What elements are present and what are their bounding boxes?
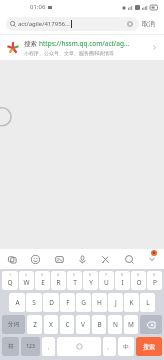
button[interactable]: 123 — [21, 337, 40, 356]
button[interactable]: Sticker — [4, 251, 20, 267]
staticText: 取消 — [142, 20, 155, 28]
staticText: V — [81, 320, 85, 329]
staticText: act/agile/417956/index.html — [18, 20, 70, 28]
staticText: G — [81, 298, 86, 307]
button[interactable]: 9 — [131, 271, 146, 290]
staticText: 1 — [9, 272, 12, 277]
staticText: A — [15, 298, 20, 307]
button[interactable]: K — [124, 293, 139, 312]
button[interactable]: G — [76, 293, 91, 312]
button[interactable]: H — [92, 293, 107, 312]
staticText: B — [97, 320, 102, 329]
staticText: 0 — [153, 272, 156, 277]
button[interactable]: Handwriting — [97, 251, 113, 267]
button[interactable]: 7 — [99, 271, 114, 290]
staticText: 123 — [26, 343, 35, 350]
staticText: https://hssm.qq.com/act/ag… — [39, 39, 130, 48]
staticText: Q — [7, 278, 13, 287]
button[interactable]: 0 — [147, 271, 162, 290]
staticText: W — [23, 278, 30, 287]
button[interactable]: act/agile/417956/index.html — [6, 17, 139, 31]
staticText: S — [32, 298, 36, 307]
button[interactable]: Voice — [74, 251, 90, 267]
button[interactable]: Z — [27, 315, 42, 334]
staticText: 6 — [89, 272, 92, 277]
staticText: 小程序、公众号、文章、服务圈和表情等 — [24, 50, 114, 56]
staticText: E — [41, 278, 45, 287]
button[interactable]: 1 — [2, 271, 18, 290]
button[interactable]: 符 — [2, 337, 19, 356]
button[interactable]: ， — [42, 337, 55, 356]
button[interactable]: 取消 — [139, 18, 158, 30]
staticText: N — [113, 320, 118, 329]
staticText: R — [56, 278, 61, 287]
staticText: 4 — [57, 272, 60, 277]
button[interactable]: N — [108, 315, 122, 334]
staticText: D — [49, 298, 54, 307]
staticText: 搜索 — [24, 40, 37, 48]
staticText: O — [136, 278, 142, 287]
button[interactable]: L — [140, 293, 155, 312]
button[interactable]: 2 — [19, 271, 34, 290]
staticText: P — [153, 278, 157, 287]
button[interactable]: X — [44, 315, 58, 334]
staticText: ， — [46, 344, 51, 350]
other: More — [151, 44, 158, 51]
staticText: 符 — [8, 343, 14, 350]
button[interactable]: S — [26, 293, 42, 312]
button[interactable]: Collapse — [144, 251, 160, 267]
staticText: H — [97, 298, 102, 307]
staticText: 9 — [137, 272, 140, 277]
staticText: Z — [33, 320, 37, 329]
staticText: J — [115, 298, 117, 307]
button[interactable]: 5 — [67, 271, 82, 290]
staticText: I — [121, 278, 124, 287]
button[interactable]: 分词 — [2, 315, 25, 334]
button[interactable]: Images — [51, 251, 67, 267]
button[interactable]: 8 — [115, 271, 130, 290]
button[interactable]: J — [108, 293, 123, 312]
staticText: 01:06 — [30, 3, 46, 11]
button[interactable]: 搜索 — [136, 337, 162, 356]
staticText: X — [49, 320, 53, 329]
staticText: 分词 — [8, 321, 19, 328]
button[interactable]: C — [60, 315, 74, 334]
staticText: 7 — [105, 272, 108, 277]
button[interactable]: F — [60, 293, 75, 312]
button[interactable]: Emoji — [27, 251, 43, 267]
staticText: F — [66, 298, 70, 307]
staticText: Y — [89, 278, 93, 287]
button[interactable]: 中 — [118, 337, 134, 356]
staticText: 。 — [107, 344, 112, 350]
button[interactable]: Clear — [125, 19, 135, 29]
staticText: 8 — [121, 272, 124, 277]
button[interactable]: 6 — [83, 271, 98, 290]
staticText: M — [128, 320, 134, 329]
button[interactable]: 4 — [51, 271, 66, 290]
button[interactable]: 搜索 — [0, 35, 164, 60]
button[interactable]: Space — [57, 337, 101, 356]
button[interactable]: Backspace — [140, 315, 162, 334]
staticText: 5 — [73, 272, 76, 277]
staticText: T — [73, 278, 77, 287]
staticText: C — [65, 320, 70, 329]
staticText: L — [146, 298, 150, 307]
button[interactable]: Search — [121, 251, 137, 267]
button[interactable]: 3 — [35, 271, 50, 290]
staticText: U — [104, 278, 109, 287]
staticText: K — [129, 298, 134, 307]
button[interactable]: A — [9, 293, 25, 312]
button[interactable]: 。 — [103, 337, 116, 356]
button[interactable]: B — [92, 315, 106, 334]
button[interactable]: D — [43, 293, 59, 312]
button[interactable]: V — [76, 315, 90, 334]
staticText: 2 — [25, 272, 28, 277]
staticText: 中 — [123, 343, 129, 351]
staticText: 搜索 — [143, 343, 155, 351]
button[interactable]: M — [124, 315, 138, 334]
staticText: 3 — [41, 272, 44, 277]
